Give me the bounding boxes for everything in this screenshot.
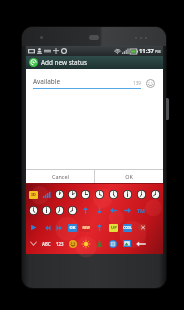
button[interactable]: Globe	[106, 237, 120, 250]
button[interactable]: Clock	[66, 188, 79, 201]
staticText: UP	[111, 225, 117, 231]
button[interactable]: Choose emoji	[145, 78, 156, 89]
button[interactable]: Rewind	[40, 221, 53, 234]
button[interactable]: Clock	[53, 188, 66, 201]
button[interactable]: Hide keyboard	[27, 237, 40, 250]
button[interactable]: Clock	[92, 188, 106, 201]
button[interactable]: Clock	[66, 204, 79, 217]
button[interactable]: Picture	[120, 237, 134, 250]
button[interactable]: Blank	[148, 204, 162, 217]
staticText: 123	[56, 241, 64, 247]
button[interactable]: Sun	[79, 237, 92, 250]
button[interactable]: OK	[66, 221, 79, 234]
button[interactable]: Play	[27, 221, 40, 234]
button[interactable]: Cancel	[26, 170, 94, 183]
button[interactable]: Clock	[120, 188, 134, 201]
button[interactable]: Up badge	[106, 221, 120, 234]
button[interactable]: Left arrow	[106, 204, 120, 217]
staticText: Cancel	[52, 173, 69, 180]
button[interactable]: Smiley	[66, 237, 79, 250]
button[interactable]: Backspace	[134, 237, 148, 250]
staticText: 11:37	[139, 47, 154, 55]
staticText: COOL	[123, 226, 132, 230]
button[interactable]: Clock	[27, 204, 40, 217]
button[interactable]: Numbers	[53, 237, 66, 250]
button[interactable]: Down arrow	[92, 204, 106, 217]
button[interactable]: Clock	[53, 204, 66, 217]
button[interactable]: Up arrow	[79, 204, 92, 217]
staticText: Add new status	[41, 58, 87, 67]
staticText: 139	[133, 80, 141, 86]
staticText: ABC	[42, 241, 51, 247]
button[interactable]: Trademark	[134, 204, 148, 217]
button[interactable]: Clock	[106, 188, 120, 201]
button[interactable]: OK	[95, 170, 163, 183]
button[interactable]: Clock	[40, 204, 53, 217]
staticText: TM	[137, 207, 145, 214]
button[interactable]: Signal	[40, 188, 53, 201]
staticText: NEW	[82, 226, 90, 230]
button[interactable]: Fast forward	[53, 221, 66, 234]
button[interactable]: Clock	[148, 188, 162, 201]
other: Power button	[166, 98, 169, 120]
staticText: OK	[69, 225, 76, 231]
staticText: Available	[33, 77, 133, 86]
button[interactable]: Add new status	[26, 56, 163, 69]
button[interactable]: Blank	[148, 237, 162, 250]
button[interactable]: Letters	[40, 237, 53, 250]
button[interactable]: Right arrow	[120, 204, 134, 217]
button[interactable]: Up	[92, 221, 106, 234]
button[interactable]: Clock	[134, 188, 148, 201]
button[interactable]: Cool	[120, 221, 134, 234]
button[interactable]: Clock	[79, 188, 92, 201]
button[interactable]: Blank	[148, 221, 162, 234]
staticText: ID	[31, 192, 36, 198]
button[interactable]: New	[79, 221, 92, 234]
button[interactable]: Delete	[134, 221, 148, 234]
staticText: PM	[155, 49, 161, 54]
button[interactable]: Keyboard theme	[27, 188, 40, 201]
staticText: OK	[125, 173, 133, 180]
button[interactable]: Tree	[92, 237, 106, 250]
